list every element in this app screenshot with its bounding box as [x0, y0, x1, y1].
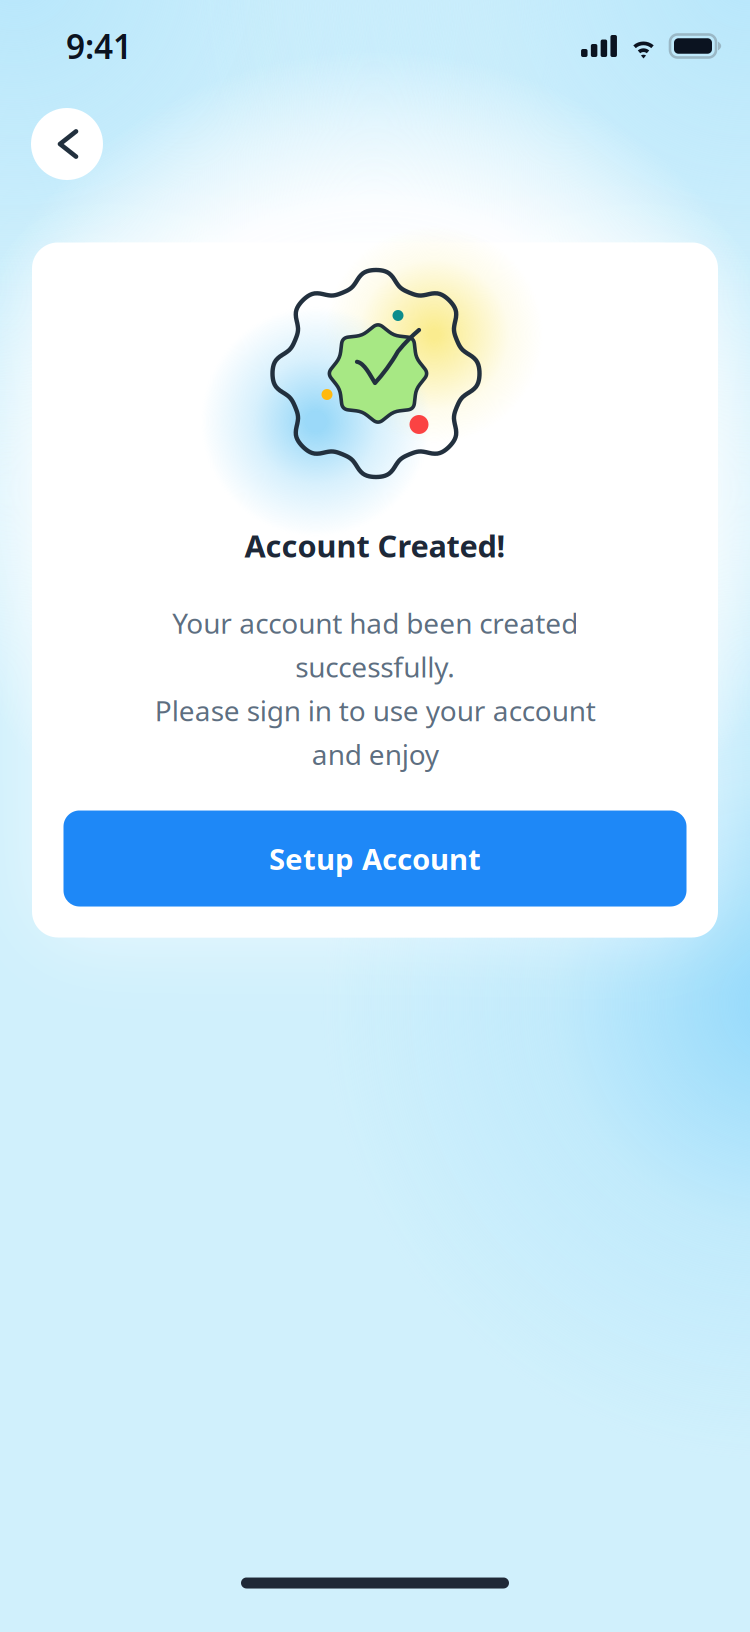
button[interactable]: Setup Account — [63, 810, 686, 906]
staticText: Account Created! — [244, 525, 505, 566]
staticText: 9:41 — [66, 24, 132, 68]
staticText: Setup Account — [269, 839, 481, 878]
staticText: Your account had been created successful… — [154, 604, 595, 773]
button[interactable]: Back — [31, 108, 103, 180]
